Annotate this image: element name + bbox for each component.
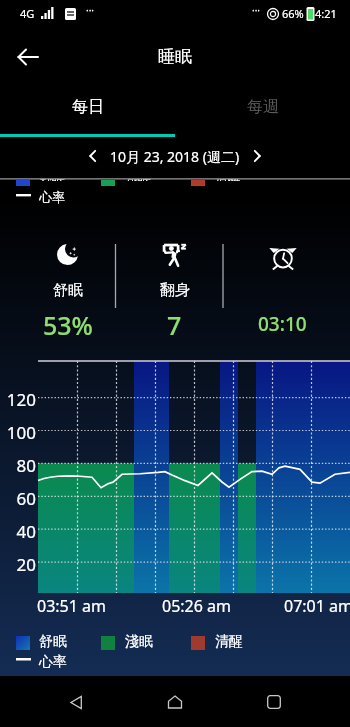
button[interactable]: Back: [6, 35, 50, 79]
button[interactable]: Next day: [242, 141, 272, 171]
staticText: 4G: [20, 6, 35, 21]
staticText: 舒眠: [53, 281, 83, 300]
button[interactable]: Recent apps: [251, 679, 297, 725]
button[interactable]: 翻身: [121, 200, 228, 352]
staticText: 清醒: [215, 633, 243, 651]
staticText: 03:10: [258, 311, 307, 337]
staticText: 心率: [39, 653, 67, 671]
staticText: ···: [86, 3, 95, 17]
staticText: 4:21: [315, 6, 337, 21]
staticText: 80: [0, 454, 36, 477]
staticText: 淺眠: [125, 633, 153, 651]
staticText: 07:01 am: [284, 595, 350, 617]
staticText: 心率: [39, 189, 65, 205]
button[interactable]: 03:10: [229, 200, 336, 352]
staticText: ···: [252, 3, 261, 17]
staticText: 20: [0, 553, 36, 576]
staticText: 舒眠: [39, 179, 65, 181]
staticText: 每日: [72, 97, 104, 117]
button[interactable]: Home: [152, 679, 198, 725]
staticText: 66%: [282, 6, 304, 21]
button[interactable]: Back: [53, 679, 99, 725]
button[interactable]: Previous day: [78, 141, 108, 171]
staticText: 7: [167, 308, 182, 342]
button[interactable]: 每週: [175, 86, 350, 134]
staticText: 03:51 am: [37, 595, 106, 617]
button[interactable]: 每日: [0, 86, 175, 134]
staticText: 53%: [43, 308, 93, 342]
staticText: 100: [0, 421, 36, 444]
staticText: 睡眠: [158, 46, 192, 67]
staticText: 10月 23, 2018 (週二): [110, 147, 240, 166]
staticText: 舒眠: [39, 633, 67, 651]
staticText: 翻身: [160, 281, 190, 300]
staticText: 淺眠: [125, 179, 151, 181]
staticText: 清醒: [215, 179, 241, 181]
button[interactable]: 舒眠: [14, 200, 121, 352]
staticText: 40: [0, 520, 36, 543]
staticText: 05:26 am: [162, 595, 231, 617]
staticText: 120: [0, 388, 36, 411]
staticText: 每週: [247, 97, 279, 117]
staticText: 60: [0, 487, 36, 510]
